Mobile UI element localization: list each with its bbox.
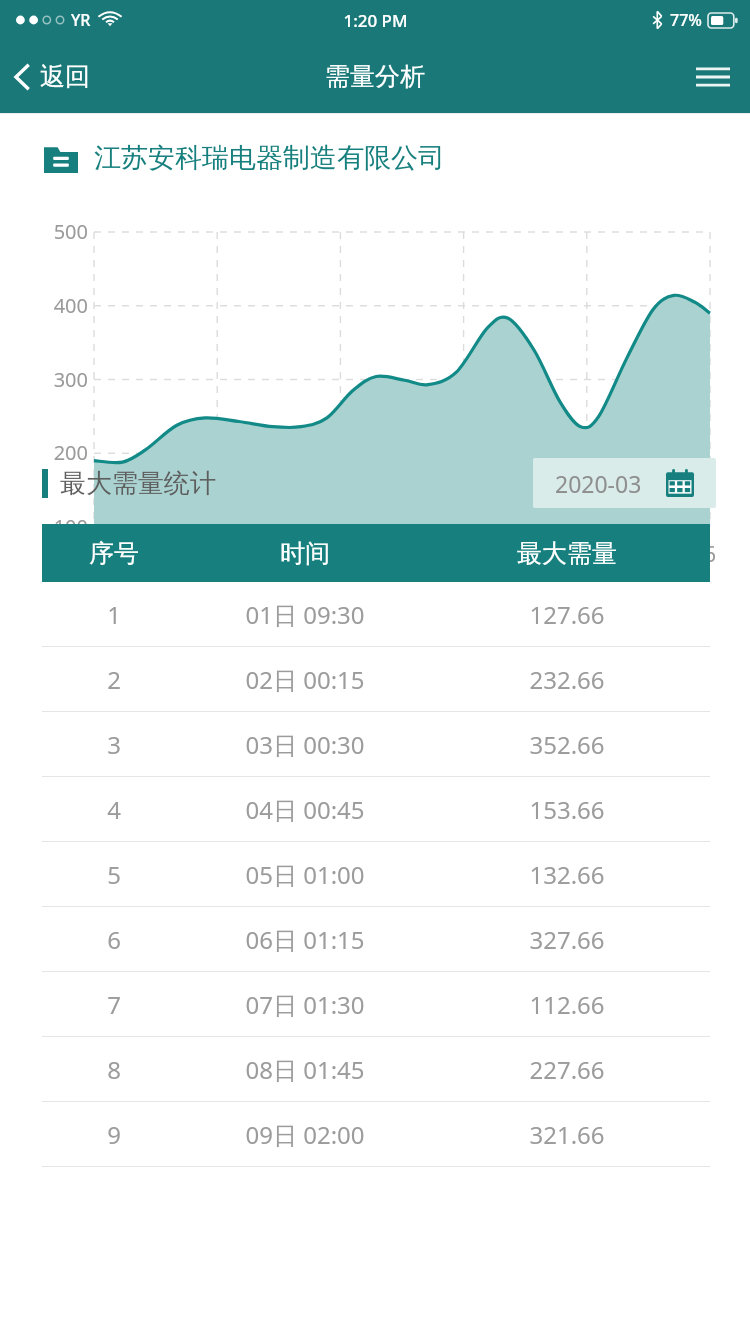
button[interactable]: 江苏安科瑞电器制造有限公司 [0,114,750,202]
button[interactable]: 8 [42,1037,710,1101]
staticText: 77% [670,9,702,31]
staticText: 112.66 [529,988,605,1021]
staticText: 01日 09:30 [245,598,365,631]
button[interactable]: 7 [42,972,710,1036]
staticText: 321.66 [529,1118,605,1151]
staticText: 6 [690,540,730,569]
button[interactable]: 5 [42,842,710,906]
staticText: 2020-03 [555,468,642,499]
staticText: 09日 02:00 [245,1118,365,1151]
staticText: 序号 [89,538,139,569]
button[interactable]: 2 [42,647,710,711]
button[interactable]: 9 [42,1102,710,1166]
button[interactable]: 1 [42,582,710,646]
staticText: 03日 00:30 [245,728,365,761]
staticText: 327.66 [529,923,605,956]
staticText: 5 [107,858,121,891]
staticText: 232.66 [529,663,605,696]
staticText: 400 [36,292,88,319]
staticText: 最大需量 [517,538,617,569]
staticText: 04日 00:45 [245,793,365,826]
staticText: YR [71,9,91,31]
staticText: 200 [36,439,88,466]
staticText: 08日 01:45 [245,1053,365,1086]
staticText: 227.66 [529,1053,605,1086]
staticText: 300 [36,366,88,393]
button[interactable]: Menu [676,40,750,113]
button[interactable]: 2020-03 [533,458,716,508]
staticText: 3 [320,540,360,569]
staticText: 2 [107,663,121,696]
staticText: 02日 00:15 [245,663,365,696]
staticText: 最大需量统计 [60,467,216,500]
staticText: 时间 [280,538,330,569]
staticText: 100 [36,513,88,540]
staticText: 5 [567,540,607,569]
button[interactable]: 序号 [42,524,710,582]
staticText: 返回 [40,61,90,92]
staticText: 07日 01:30 [245,988,365,1021]
staticText: 127.66 [529,598,605,631]
button[interactable]: 6 [42,907,710,971]
staticText: 3 [107,728,121,761]
staticText: 6 [107,923,121,956]
button[interactable]: 返回 [0,40,106,113]
staticText: 江苏安科瑞电器制造有限公司 [94,141,445,175]
button[interactable]: 4 [42,777,710,841]
staticText: 500 [36,218,88,245]
staticText: 132.66 [529,858,605,891]
staticText: 7 [107,988,121,1021]
staticText: 05日 01:00 [245,858,365,891]
staticText: 352.66 [529,728,605,761]
staticText: 1 [107,598,121,631]
staticText: 4 [107,793,121,826]
staticText: 153.66 [529,793,605,826]
staticText: 1 [74,540,114,569]
staticText: 需量分析 [325,61,425,92]
staticText: 9 [107,1118,121,1151]
staticText: 1:20 PM [343,9,408,32]
button[interactable]: 3 [42,712,710,776]
staticText: 8 [107,1053,121,1086]
staticText: 06日 01:15 [245,923,365,956]
